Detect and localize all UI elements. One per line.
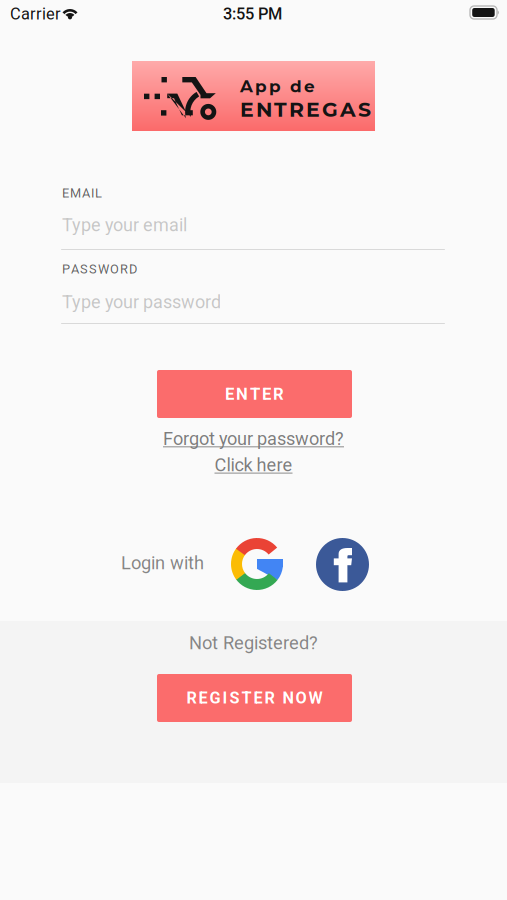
staticText: E N T E R [225,384,284,404]
button[interactable]: Sign in with Google [231,538,283,590]
staticText: Click here [214,454,292,476]
staticText: Not Registered? [189,632,318,654]
button[interactable]: E N T E R [157,370,352,418]
staticText: E N T R E G A S [240,97,371,122]
staticText: E M A I L [62,185,102,200]
staticText: Carrier [10,4,61,24]
staticText: R E G I S T E R N O W [186,688,322,708]
staticText: Login with [121,552,204,574]
staticText: 3:55 PM [223,4,282,24]
staticText: Type your email [62,214,187,236]
button[interactable]: R E G I S T E R N O W [157,674,352,722]
staticText: P A S S W O R D [62,261,137,276]
staticText: Type your password [62,291,221,313]
button[interactable]: Sign in with Facebook [316,538,369,591]
staticText: A p p d e [240,76,315,96]
staticText: Forgot your password? [163,428,344,449]
button[interactable]: Forgot your password? [131,430,376,474]
